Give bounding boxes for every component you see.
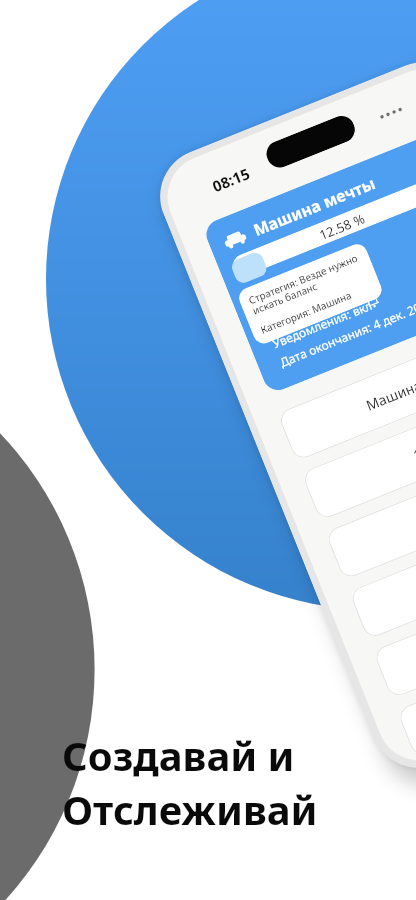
staticText: Категория: Машина [258, 288, 353, 337]
staticText: Машина мечты [363, 357, 416, 415]
staticText: 1000000 [410, 426, 416, 465]
staticText: 12.58 % [316, 209, 368, 244]
button[interactable]: Машина мечты [277, 310, 416, 462]
staticText: Стратегия: Везде нужно искать баланс [246, 251, 364, 317]
staticText: Создавай и [62, 728, 295, 782]
button[interactable]: Уведомления [396, 607, 416, 758]
staticText: Машина мечты [250, 172, 379, 241]
button[interactable]: 1000000 [301, 369, 416, 521]
staticText: Отслеживай [62, 782, 318, 836]
button[interactable]: Закрепить [372, 547, 416, 699]
button[interactable]: Машина мечты [202, 122, 416, 395]
button[interactable]: 125800 [325, 428, 416, 580]
button[interactable]: ₽ [349, 488, 416, 640]
staticText: 08:15 [209, 163, 253, 196]
staticText: Уведомления: вкл [270, 297, 375, 351]
staticText: Дата окончания: 4 дек. 2025 г. [277, 289, 416, 370]
